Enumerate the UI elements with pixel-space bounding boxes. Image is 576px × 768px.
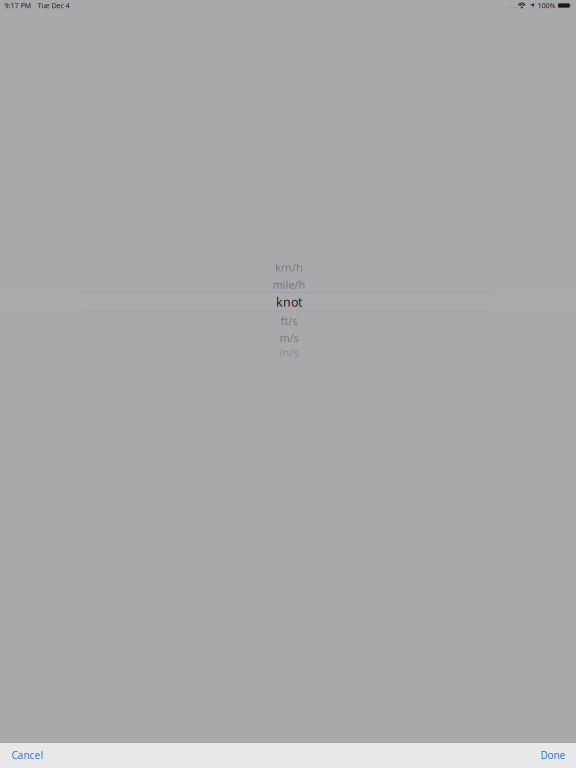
staticText: Done (540, 748, 565, 762)
staticText: 9:17 PM (4, 1, 31, 10)
button[interactable]: mile/h (85, 276, 493, 293)
button[interactable]: km/h (85, 259, 493, 276)
staticText: in/s (279, 345, 298, 360)
button[interactable]: m/s (85, 330, 493, 346)
staticText: 100% (537, 1, 555, 10)
button[interactable]: Done (529, 743, 576, 766)
staticText: m/s (279, 330, 298, 345)
staticText: Tue Dec 4 (37, 1, 69, 10)
staticText: km/h (275, 259, 303, 275)
staticText: ft/s (280, 314, 297, 328)
button[interactable]: Cancel (0, 743, 55, 766)
button[interactable]: knot (85, 293, 493, 311)
staticText: knot (276, 294, 302, 310)
staticText: Cancel (11, 748, 43, 762)
button[interactable]: ft/s (85, 313, 493, 330)
staticText: mile/h (272, 277, 305, 292)
